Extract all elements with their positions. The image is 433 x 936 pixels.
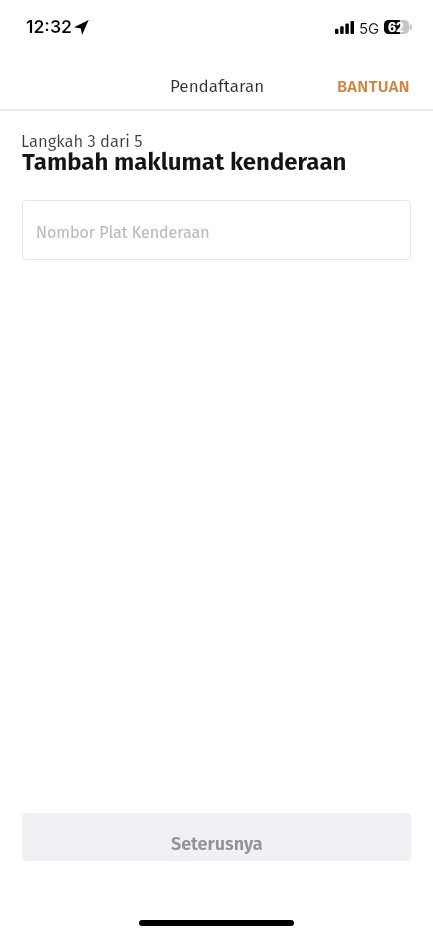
staticText: Langkah 3 dari 5 <box>21 132 143 152</box>
staticText: 5G <box>359 19 380 37</box>
staticText: Seterusnya <box>171 833 263 855</box>
staticText: Tambah maklumat kenderaan <box>22 148 347 177</box>
button[interactable]: Seterusnya <box>22 813 411 861</box>
staticText: 62 <box>388 20 404 34</box>
staticText: 12:32 <box>26 16 72 37</box>
other: Location active <box>74 20 89 35</box>
other: Battery 62 percent <box>384 20 412 34</box>
button[interactable]: Nombor Plat Kenderaan input field <box>22 200 411 260</box>
staticText: Pendaftaran <box>170 76 265 96</box>
staticText: Nombor Plat Kenderaan <box>36 223 210 242</box>
staticText: BANTUAN <box>337 77 410 97</box>
button[interactable]: BANTUAN <box>312 68 433 108</box>
